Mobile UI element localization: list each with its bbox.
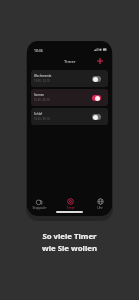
staticText: Sonnen — [34, 93, 45, 97]
staticText: Timer — [66, 206, 75, 210]
staticText: 19:00 - 23:10 — [34, 79, 50, 83]
button[interactable]: Timer — [58, 197, 82, 210]
staticText: 14:20 - 09:10 — [34, 117, 50, 121]
button[interactable]: Uhr — [88, 197, 112, 210]
button[interactable]: Timer off — [92, 114, 101, 120]
staticText: Stoppuhr — [32, 206, 47, 210]
staticText: Schlaf — [34, 112, 43, 116]
staticText: wie Sie wollen — [42, 243, 97, 254]
staticText: Uhr — [97, 206, 103, 210]
button[interactable]: Sonnen — [31, 89, 108, 106]
button[interactable]: Add timer — [95, 56, 105, 66]
staticText: So viele Timer — [42, 231, 97, 242]
staticText: 01:40 - 06:10 — [34, 98, 50, 102]
button[interactable]: Timer on — [92, 95, 101, 101]
staticText: 10:36 — [34, 48, 43, 53]
staticText: Wochenende — [34, 74, 52, 78]
button[interactable]: Schlaf — [31, 108, 108, 125]
button[interactable]: Wochenende — [31, 70, 108, 87]
button[interactable]: Stoppuhr — [27, 197, 51, 210]
staticText: Timer — [64, 59, 76, 65]
button[interactable]: Timer off — [92, 76, 101, 82]
